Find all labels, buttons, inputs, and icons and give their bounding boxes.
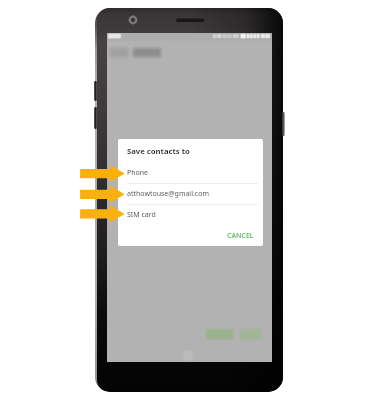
- button[interactable]: Home: [181, 348, 195, 362]
- staticText: CANCEL: [227, 231, 254, 241]
- button[interactable]: SIM card: [118, 205, 263, 225]
- staticText: SIM card: [127, 210, 156, 220]
- button[interactable]: Cancel: [207, 328, 234, 340]
- button[interactable]: Phone: [118, 163, 263, 183]
- staticText: Save contacts to: [127, 146, 190, 156]
- staticText: atthowtouse@gmail.com: [127, 189, 209, 199]
- button[interactable]: Save: [241, 328, 262, 340]
- button[interactable]: CANCEL: [218, 228, 263, 244]
- staticText: Phone: [127, 168, 149, 178]
- button[interactable]: atthowtouse@gmail.com: [118, 184, 263, 204]
